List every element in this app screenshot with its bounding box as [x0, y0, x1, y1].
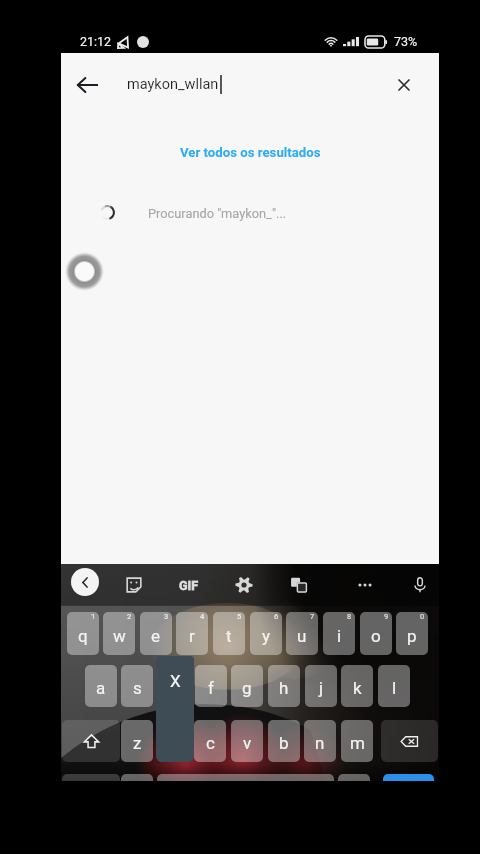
button[interactable]: c — [194, 720, 226, 762]
staticText: j — [319, 678, 324, 698]
button[interactable]: w — [103, 612, 135, 655]
staticText: 0 — [420, 612, 425, 621]
button[interactable]: h — [268, 665, 300, 707]
staticText: 3 — [164, 612, 169, 621]
staticText: y — [262, 626, 271, 646]
button[interactable]: Settings — [229, 570, 259, 600]
button[interactable]: Close keyboard toolbar — [71, 568, 99, 596]
button[interactable]: l — [378, 665, 410, 707]
staticText: p — [407, 626, 417, 646]
staticText: h — [279, 678, 289, 698]
staticText: 6 — [274, 612, 279, 621]
staticText: t — [226, 626, 232, 646]
button[interactable]: Search — [383, 774, 434, 781]
button[interactable]: Ver todos os resultados — [170, 139, 331, 166]
staticText: g — [242, 678, 252, 698]
staticText: o — [371, 626, 381, 646]
button[interactable]: o — [360, 612, 392, 655]
button[interactable]: Voice input — [405, 570, 435, 600]
staticText: Procurando "maykon_"... — [148, 206, 287, 221]
staticText: Ver todos os resultados — [180, 145, 321, 160]
button[interactable]: Clear text — [384, 65, 424, 105]
staticText: v — [243, 733, 252, 753]
staticText: s — [133, 678, 142, 698]
button[interactable]: Back — [66, 64, 108, 106]
staticText: u — [297, 626, 307, 646]
staticText: r — [189, 626, 195, 646]
button[interactable]: u — [286, 612, 318, 655]
staticText: maykon_wllan — [127, 76, 219, 93]
button[interactable]: Stickers — [119, 570, 149, 600]
staticText: q — [78, 626, 88, 646]
button[interactable]: Backspace — [381, 720, 438, 762]
staticText: b — [279, 733, 289, 753]
staticText: f — [208, 678, 214, 698]
staticText: w — [113, 626, 126, 646]
staticText: z — [133, 733, 142, 753]
button[interactable]: p — [396, 612, 428, 655]
staticText: 1 — [91, 612, 96, 621]
button[interactable]: g — [231, 665, 263, 707]
button[interactable]: Comma — [121, 774, 153, 781]
staticText: e — [151, 626, 161, 646]
staticText: 73% — [394, 34, 418, 49]
button[interactable]: j — [305, 665, 337, 707]
staticText: 5 — [237, 612, 242, 621]
staticText: n — [315, 733, 325, 753]
staticText: X — [170, 671, 181, 691]
button[interactable]: q — [67, 612, 99, 655]
staticText: c — [206, 733, 215, 753]
staticText: d — [169, 678, 179, 698]
staticText: l — [392, 678, 397, 698]
button[interactable]: Symbols — [62, 774, 120, 781]
button[interactable]: t — [213, 612, 245, 655]
staticText: 7 — [310, 612, 315, 621]
button[interactable]: Period — [338, 774, 370, 781]
staticText: a — [96, 678, 106, 698]
button[interactable]: b — [268, 720, 300, 762]
button[interactable]: f — [195, 665, 227, 707]
button[interactable]: GIF — [169, 570, 209, 600]
staticText: 9 — [384, 612, 389, 621]
button[interactable]: n — [304, 720, 336, 762]
staticText: k — [353, 678, 362, 698]
button[interactable]: d — [158, 665, 190, 707]
button[interactable]: r — [176, 612, 208, 655]
button[interactable]: s — [121, 665, 153, 707]
button[interactable]: y — [250, 612, 282, 655]
button[interactable]: k — [341, 665, 373, 707]
staticText: 2 — [127, 612, 132, 621]
button[interactable]: More options — [350, 570, 380, 600]
button[interactable]: e — [140, 612, 172, 655]
button[interactable]: z — [121, 720, 153, 762]
button[interactable]: m — [341, 720, 373, 762]
button[interactable]: Shift — [62, 720, 120, 762]
staticText: m — [350, 733, 365, 753]
staticText: 4 — [200, 612, 205, 621]
button[interactable]: i — [323, 612, 355, 655]
button[interactable]: v — [231, 720, 263, 762]
button[interactable]: Space — [157, 774, 334, 781]
staticText: i — [337, 626, 342, 646]
button[interactable]: a — [85, 665, 117, 707]
staticText: GIF — [179, 578, 199, 593]
staticText: 8 — [347, 612, 352, 621]
staticText: 21:12 — [80, 34, 112, 49]
button[interactable]: Translate — [284, 570, 314, 600]
